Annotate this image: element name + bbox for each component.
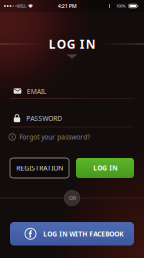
button[interactable]: LOG IN: [76, 158, 134, 178]
button[interactable]: i: [9, 131, 90, 143]
staticText: 4:21 PM: [57, 2, 76, 10]
staticText: 100%: [116, 3, 125, 9]
staticText: L O G I N: [48, 36, 95, 52]
button[interactable]: PASSWORD: [0, 106, 144, 129]
staticText: REGISTRATION: [16, 164, 63, 172]
staticText: BELL: [17, 3, 26, 9]
button[interactable]: REGISTRATION: [10, 158, 69, 178]
staticText: OR: [68, 194, 75, 202]
staticText: EMAIL: [26, 87, 46, 96]
button[interactable]: EMAIL: [0, 79, 144, 102]
staticText: i: [11, 133, 13, 141]
button[interactable]: LOG IN WITH FACEBOOK: [10, 222, 134, 246]
staticText: LOG IN: [93, 164, 117, 172]
staticText: Forgot your password?: [19, 133, 90, 141]
staticText: LOG IN WITH FACEBOOK: [43, 229, 123, 238]
staticText: PASSWORD: [26, 114, 62, 123]
